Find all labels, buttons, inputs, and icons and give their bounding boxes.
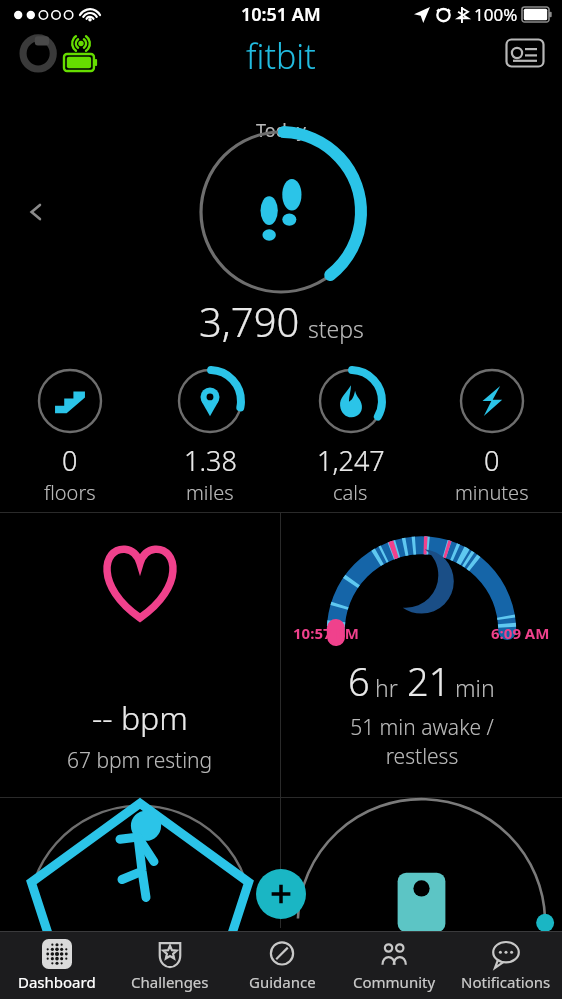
staticText: 3,790 xyxy=(199,294,300,348)
staticText: 1.38 xyxy=(184,442,237,479)
staticText: 67 bpm resting xyxy=(67,746,213,775)
button[interactable]: miles xyxy=(140,358,280,510)
button[interactable]: Sleep xyxy=(281,513,562,797)
button[interactable]: Challenges xyxy=(113,931,226,999)
staticText: 0 xyxy=(62,442,78,479)
staticText: floors xyxy=(44,479,96,506)
staticText: 10:51 AM xyxy=(241,2,321,27)
staticText: 10:57 PM xyxy=(293,623,359,643)
button[interactable]: cals xyxy=(280,358,421,510)
staticText: 1,247 xyxy=(317,442,385,479)
staticText: minutes xyxy=(455,479,529,506)
button[interactable]: Steps xyxy=(195,126,367,298)
staticText: min xyxy=(455,672,495,703)
staticText: 21 xyxy=(407,655,451,707)
staticText: 6:09 AM xyxy=(491,623,550,643)
button[interactable]: floors xyxy=(0,358,140,510)
staticText: fitbit xyxy=(246,33,316,79)
button[interactable]: Add xyxy=(256,869,306,919)
button[interactable]: Weight xyxy=(281,798,562,928)
staticText: hr xyxy=(375,672,398,703)
staticText: 100% xyxy=(474,3,518,26)
button[interactable]: Tracker xyxy=(18,32,60,74)
staticText: Today xyxy=(256,118,306,143)
staticText: miles xyxy=(186,479,234,506)
button[interactable]: Notifications xyxy=(450,931,562,999)
staticText: Guidance xyxy=(249,972,316,992)
button[interactable]: Exercise xyxy=(0,798,280,928)
staticText: cals xyxy=(333,479,368,506)
staticText: Dashboard xyxy=(18,972,96,992)
button[interactable]: Community xyxy=(338,931,450,999)
staticText: Notifications xyxy=(461,972,551,992)
staticText: Challenges xyxy=(131,972,209,992)
staticText: Community xyxy=(353,972,436,992)
button[interactable]: Guidance xyxy=(226,931,338,999)
button[interactable]: Dashboard xyxy=(0,931,113,999)
staticText: 51 min awake / restless xyxy=(350,713,494,771)
button[interactable]: Account xyxy=(504,36,546,70)
staticText: steps xyxy=(308,313,364,344)
button[interactable]: Heart rate xyxy=(0,513,280,797)
staticText: -- bpm xyxy=(92,696,188,740)
button[interactable]: minutes xyxy=(421,358,562,510)
button[interactable]: Previous xyxy=(14,190,58,234)
staticText: 0 xyxy=(484,442,500,479)
staticText: 6 xyxy=(348,655,370,707)
